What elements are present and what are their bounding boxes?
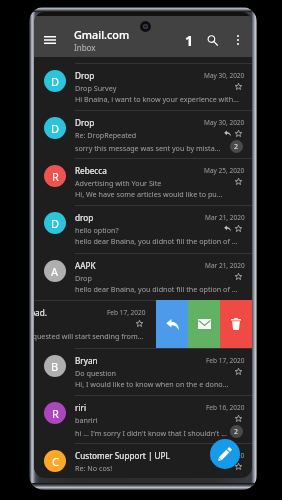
staticText: 1 — [185, 30, 194, 50]
button[interactable]: R — [34, 395, 252, 443]
staticText: AAPK — [75, 260, 201, 271]
staticText: R — [52, 169, 59, 184]
staticText: Mar 21, 2020 — [205, 261, 245, 270]
staticText: Drop Survey — [75, 83, 232, 93]
staticText: Gmail.com — [74, 27, 130, 42]
staticText: Hi, I would like to know when on the e d… — [75, 379, 245, 389]
staticText: May 30, 2020 — [204, 71, 245, 80]
button[interactable]: R — [34, 158, 252, 206]
staticText: 2 — [234, 142, 239, 152]
button[interactable]: Navigation menu — [39, 29, 61, 51]
button[interactable]: Reply — [156, 300, 188, 348]
staticText: Drop — [75, 117, 200, 128]
staticText: sorry this message was sent you by mista… — [75, 143, 227, 153]
button[interactable]: D — [34, 63, 252, 111]
staticText: Customer Support | UPL — [75, 450, 207, 461]
staticText: D — [51, 74, 60, 89]
staticText: riri — [75, 402, 202, 413]
staticText: Jan 2, 2020 — [211, 451, 245, 460]
staticText: Feb 17, 2020 — [206, 356, 245, 365]
button[interactable]: B — [34, 348, 252, 396]
staticText: Inbox — [74, 42, 96, 53]
staticText: Feb 16, 2020 — [206, 403, 245, 412]
staticText: Drop — [75, 70, 200, 81]
staticText: D — [51, 121, 60, 136]
staticText: B — [51, 359, 59, 374]
staticText: May 30, 2020 — [204, 118, 245, 127]
staticText: Drop — [75, 273, 232, 283]
staticText: Bryan — [75, 355, 202, 366]
button[interactable]: Delete — [220, 300, 252, 348]
staticText: Advertising with Your Site — [75, 178, 232, 188]
button[interactable]: Compose — [210, 439, 240, 469]
button[interactable]: Search — [202, 30, 222, 50]
staticText: banriri — [75, 415, 232, 425]
staticText: The download requested will start sendin… — [34, 331, 146, 341]
button[interactable]: Archive — [188, 300, 220, 348]
staticText: drop — [75, 212, 201, 223]
staticText: Google Download. — [34, 307, 103, 318]
staticText: hello option? — [75, 225, 221, 235]
staticText: Rebecca — [75, 165, 200, 176]
button[interactable]: C — [34, 443, 252, 478]
button[interactable]: D — [34, 205, 252, 253]
staticText: Re: DropRepeated — [75, 130, 221, 140]
staticText: May 25, 2020 — [204, 166, 245, 175]
staticText: R — [52, 406, 59, 421]
staticText: Do question — [75, 368, 232, 378]
button[interactable]: 1 — [182, 26, 197, 54]
staticText: hi ... I'm sorry I didn't know that I sh… — [75, 428, 227, 438]
staticText: hello dear Bnaina, you didnot fill the o… — [75, 284, 245, 294]
button[interactable]: A — [34, 253, 252, 301]
staticText: Mar 21, 2020 — [205, 213, 245, 222]
staticText: 2 — [234, 427, 239, 437]
staticText: hello dear Bnaina, you didnot fill the o… — [75, 236, 245, 246]
staticText: D — [51, 216, 60, 231]
staticText: Re: No cos! — [75, 463, 232, 473]
staticText: Hi, We have some articles would like to … — [75, 189, 245, 199]
staticText: C — [52, 454, 59, 469]
staticText: A — [51, 264, 59, 279]
button[interactable]: More options — [228, 30, 248, 50]
staticText: Feb 17, 2020 — [107, 308, 146, 317]
staticText: Hi Bnaina, i want to know your experienc… — [75, 94, 245, 104]
button[interactable]: D — [34, 110, 252, 158]
